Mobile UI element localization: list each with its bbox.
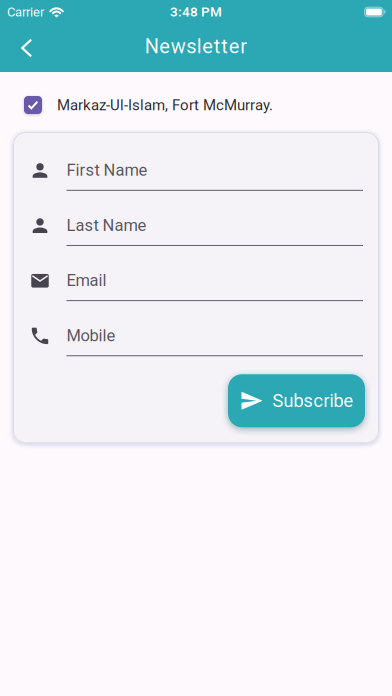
staticText: Carrier	[7, 4, 44, 20]
staticText: First Name	[66, 160, 147, 180]
button[interactable]: First Name	[29, 160, 363, 191]
staticText: Email	[66, 271, 106, 290]
button[interactable]: Last Name	[29, 216, 363, 246]
button[interactable]: Back	[0, 24, 48, 72]
staticText: Markaz-Ul-Islam, Fort McMurray.	[57, 96, 273, 114]
button[interactable]: Mobile	[29, 326, 363, 356]
button[interactable]: Email	[29, 271, 363, 301]
staticText: Last Name	[66, 216, 146, 235]
button[interactable]: Subscribe	[228, 374, 365, 427]
staticText: Mobile	[66, 326, 115, 345]
staticText: Newsletter	[145, 35, 247, 58]
staticText: 3:48 PM	[170, 4, 222, 20]
staticText: Subscribe	[272, 390, 353, 412]
button[interactable]: Markaz-Ul-Islam, Fort McMurray.	[0, 72, 273, 114]
